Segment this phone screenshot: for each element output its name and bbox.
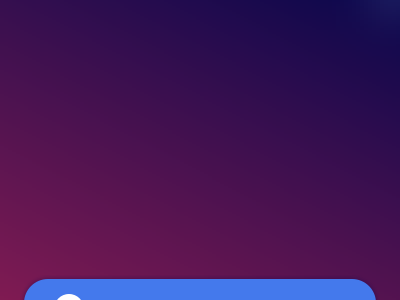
button[interactable]: Continue — [24, 279, 376, 300]
